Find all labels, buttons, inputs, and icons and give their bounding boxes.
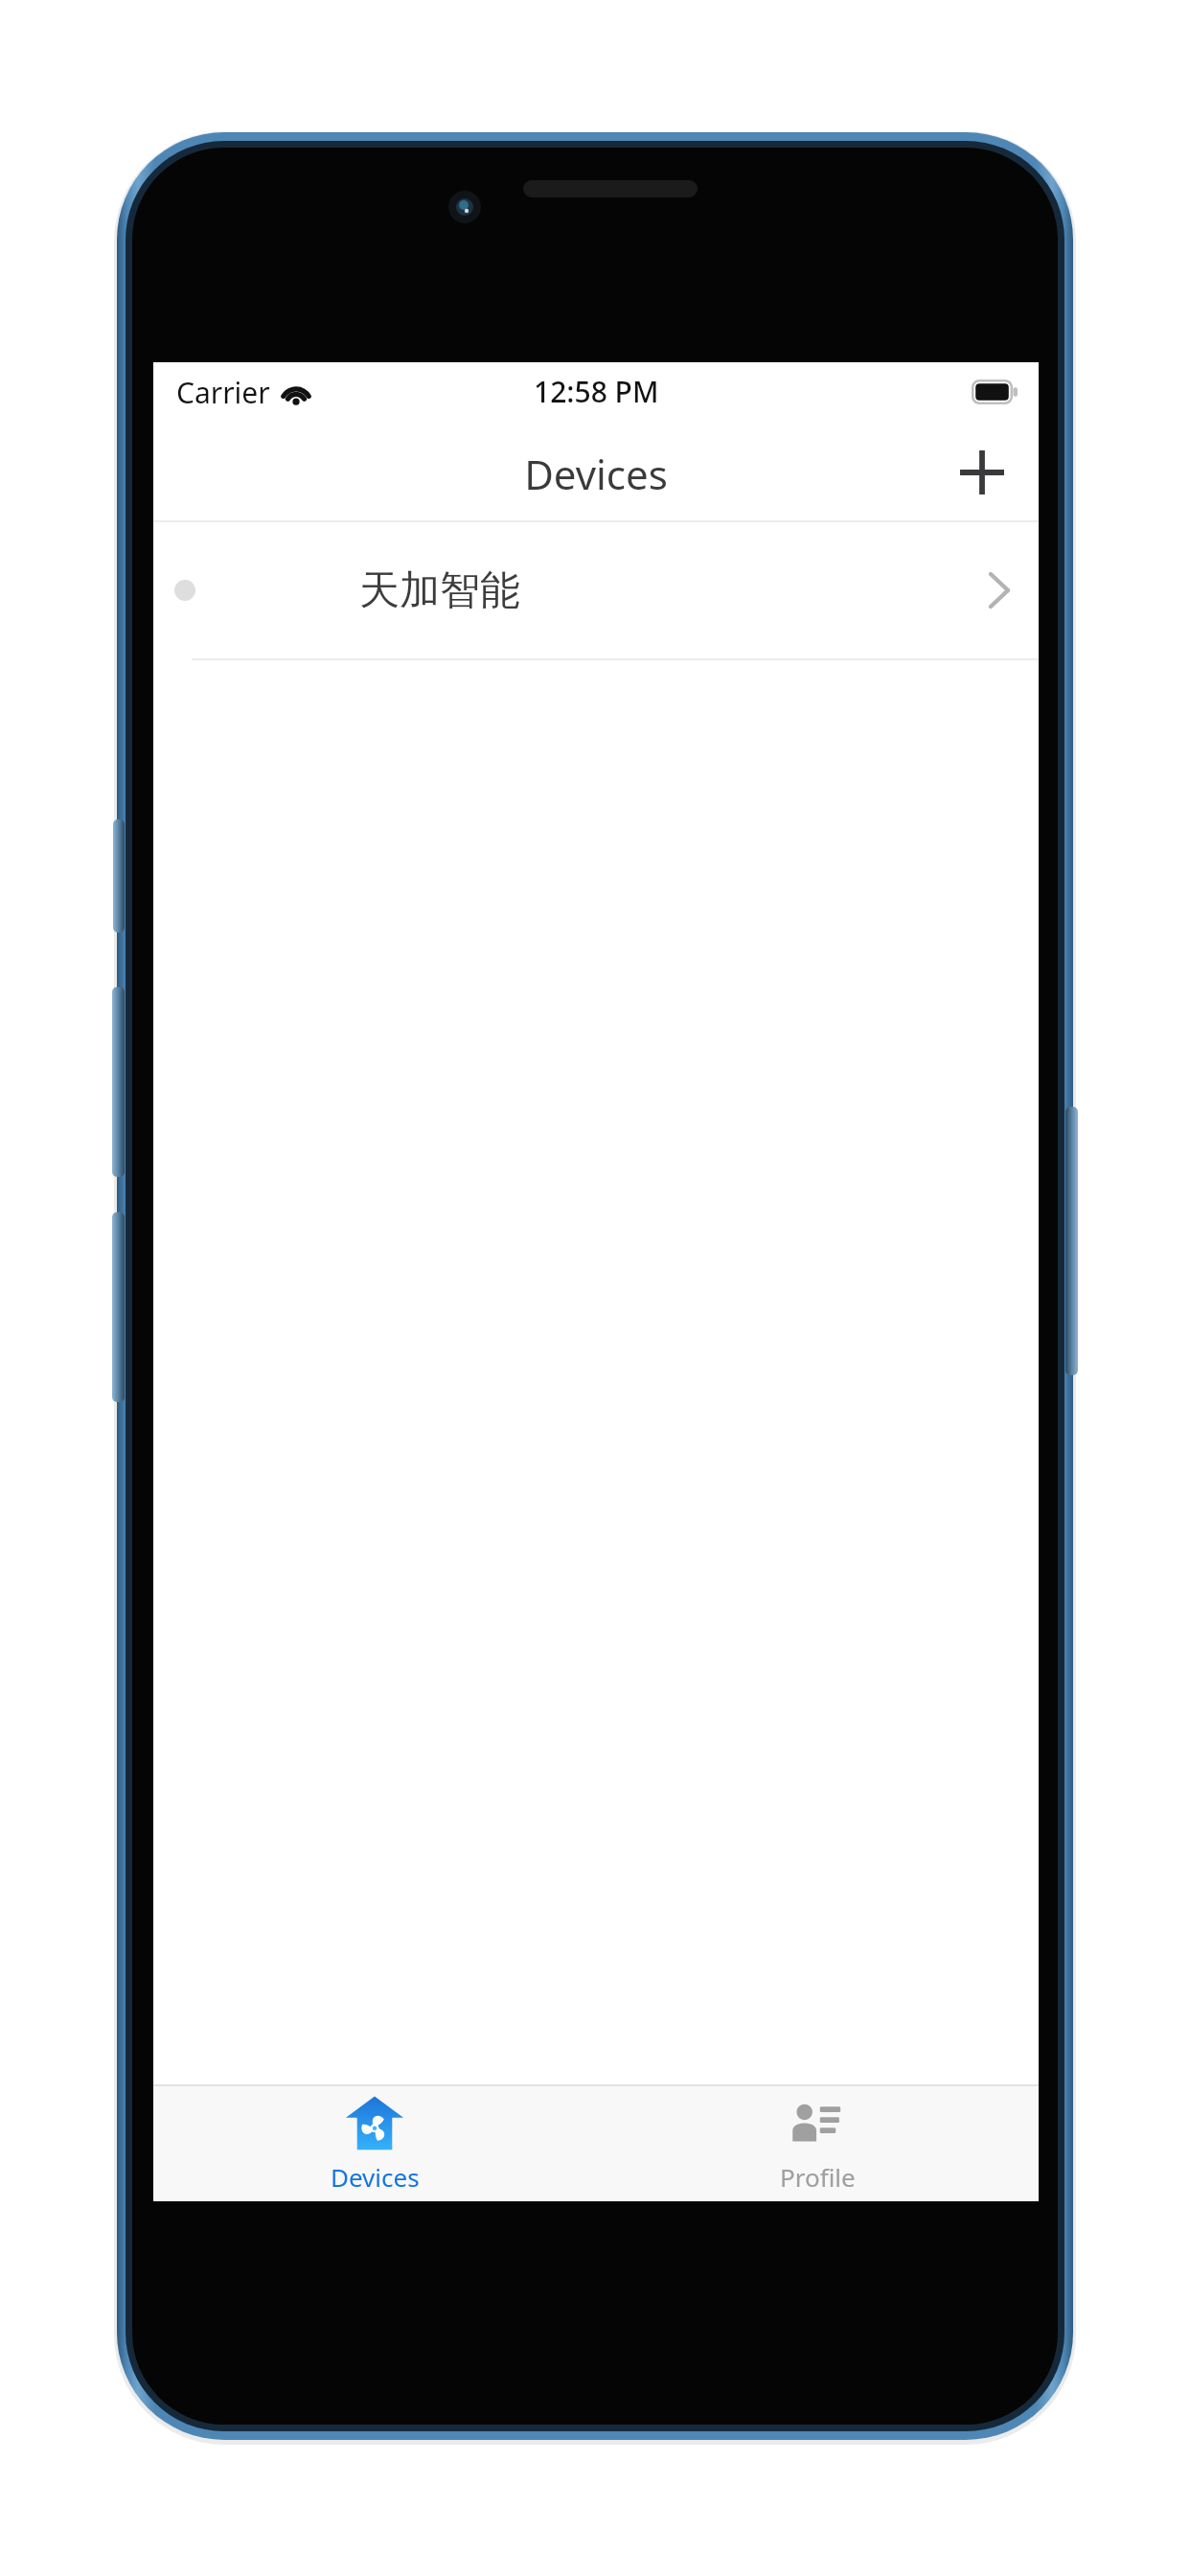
- button[interactable]: Devices: [153, 2086, 596, 2201]
- button[interactable]: 天加智能: [153, 522, 1039, 658]
- staticText: Carrier: [176, 373, 270, 412]
- staticText: Devices: [524, 447, 668, 501]
- staticText: Devices: [331, 2160, 420, 2194]
- staticText: 12:58 PM: [534, 372, 659, 411]
- button[interactable]: Profile: [596, 2086, 1039, 2201]
- staticText: 天加智能: [359, 565, 520, 616]
- staticText: Profile: [780, 2160, 856, 2194]
- button[interactable]: Add device: [941, 431, 1023, 514]
